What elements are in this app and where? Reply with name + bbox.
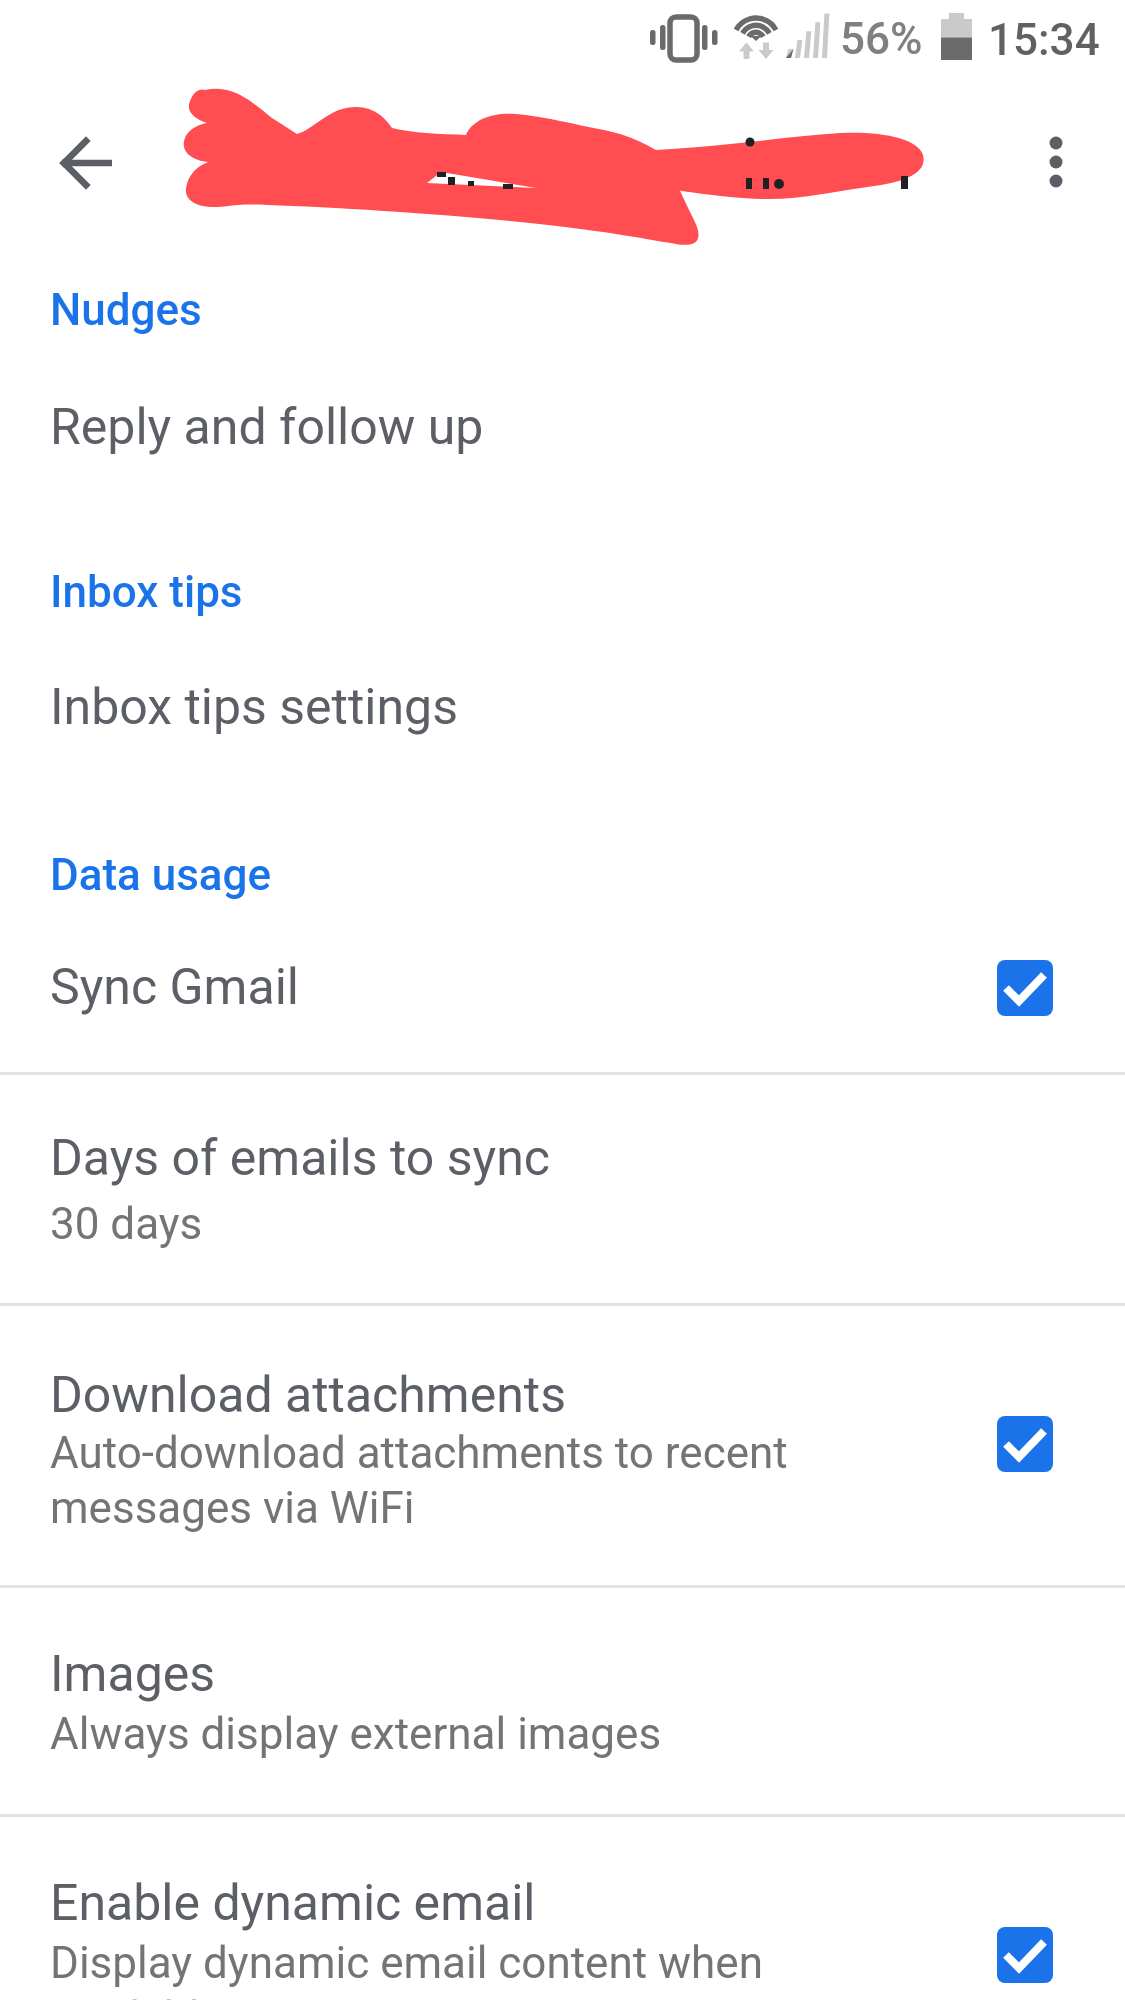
staticText: Data usage	[50, 849, 272, 901]
staticText: Images	[50, 1645, 216, 1704]
button[interactable]: More options	[1001, 108, 1111, 218]
staticText: Download attachments	[50, 1366, 566, 1425]
staticText: Sync Gmail	[50, 958, 299, 1017]
button[interactable]: Download attachments	[0, 1304, 1125, 1584]
staticText: Inbox tips settings	[50, 678, 458, 737]
button[interactable]: Enable dynamic email	[997, 1927, 1053, 1983]
button[interactable]: Sync Gmail	[0, 930, 1125, 1070]
button[interactable]: Download attachments	[997, 1416, 1053, 1472]
staticText: Days of emails to sync	[50, 1129, 550, 1188]
staticText: 56%	[840, 13, 923, 65]
button[interactable]: Inbox tips settings	[0, 660, 1125, 752]
staticText: 30 days	[50, 1198, 203, 1250]
staticText: Enable dynamic email	[50, 1874, 536, 1933]
staticText: Reply and follow up	[50, 398, 484, 457]
button[interactable]: Reply and follow up	[0, 380, 1125, 472]
staticText: Auto-download attachments to recent mess…	[50, 1427, 788, 1533]
button[interactable]: Images	[0, 1586, 1125, 1813]
staticText: Inbox tips	[50, 566, 243, 618]
staticText: Nudges	[50, 284, 202, 336]
staticText: 15:34	[988, 14, 1100, 66]
button[interactable]: Navigate up	[32, 108, 142, 218]
button[interactable]: Enable dynamic email	[0, 1815, 1125, 2000]
staticText: Display dynamic email content when avail…	[50, 1937, 763, 2000]
button[interactable]: Days of emails to sync	[0, 1075, 1125, 1303]
staticText: Always display external images	[50, 1708, 662, 1760]
button[interactable]: Sync Gmail	[997, 960, 1053, 1016]
